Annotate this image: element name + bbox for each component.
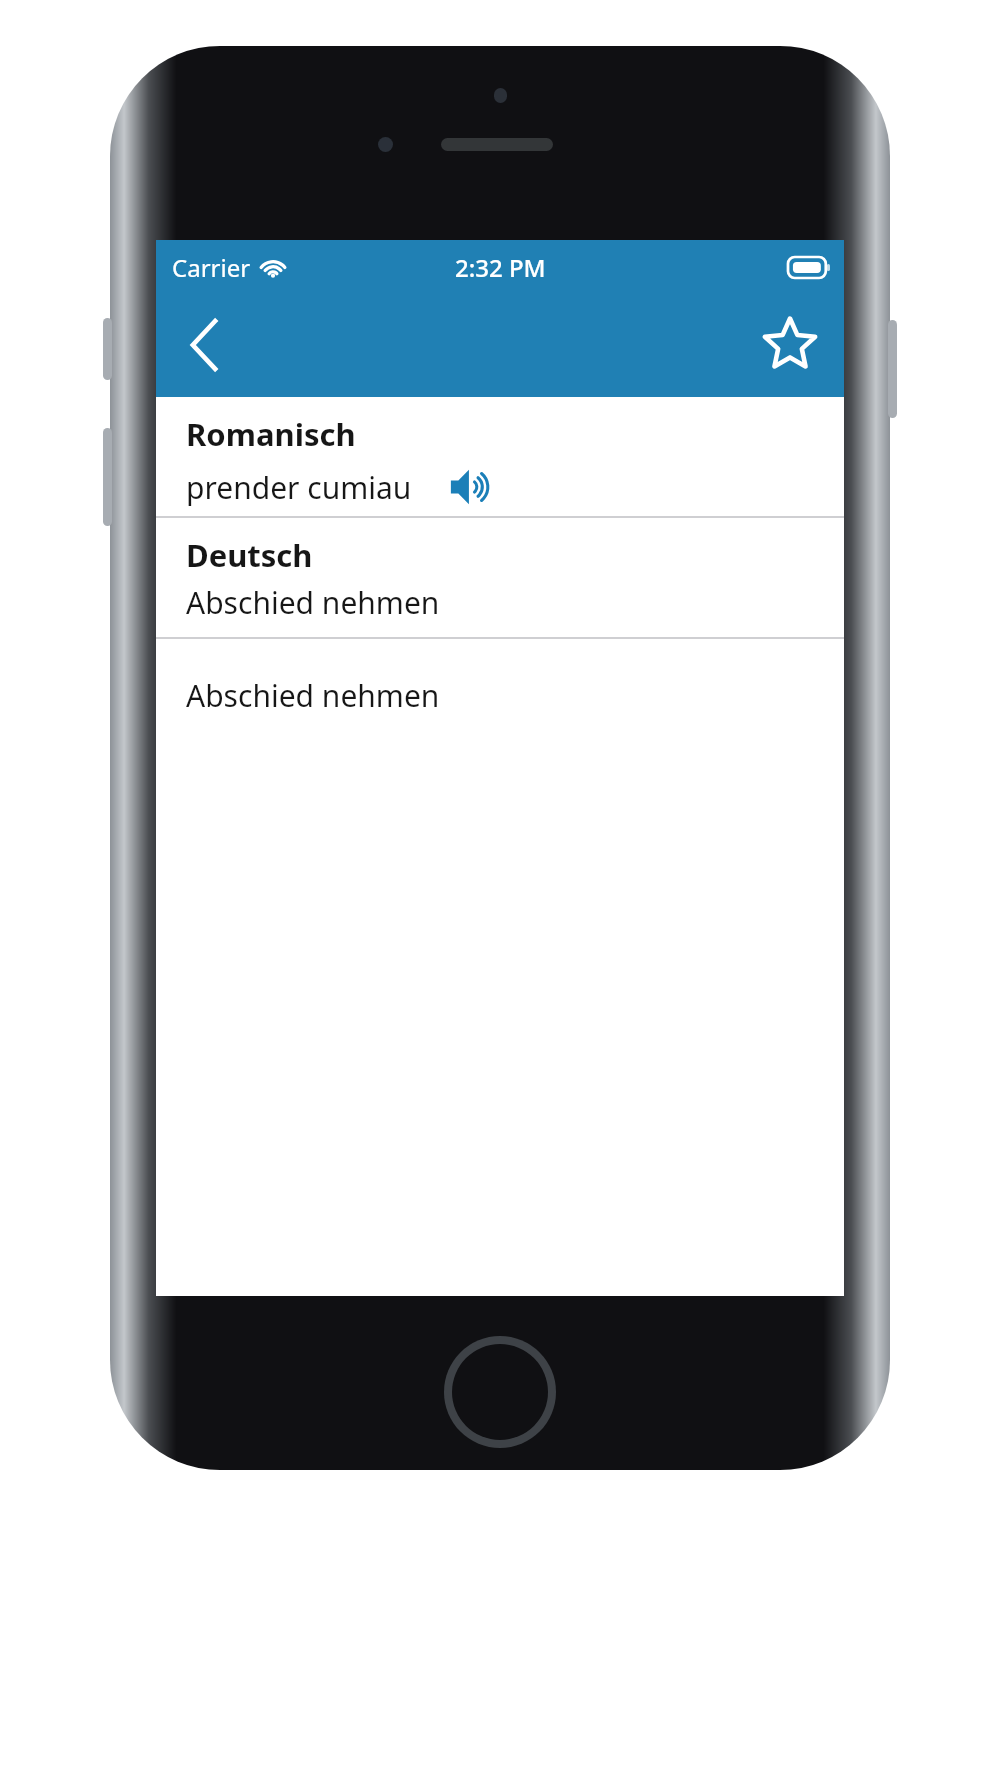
button[interactable]: Abschied nehmen <box>156 639 844 751</box>
staticText: Abschied nehmen <box>186 675 440 716</box>
staticText: Carrier <box>172 251 251 284</box>
staticText: prender cumiau <box>186 467 412 508</box>
button[interactable]: Romanisch <box>156 397 844 516</box>
button[interactable]: Deutsch <box>156 518 844 637</box>
button[interactable]: Back <box>164 305 244 385</box>
staticText: Deutsch <box>186 534 313 576</box>
staticText: Abschied nehmen <box>186 582 440 623</box>
staticText: 2:32 PM <box>455 251 546 284</box>
button[interactable]: Play pronunciation <box>446 461 498 513</box>
button[interactable]: Favourite <box>748 303 832 387</box>
staticText: Romanisch <box>186 413 356 455</box>
